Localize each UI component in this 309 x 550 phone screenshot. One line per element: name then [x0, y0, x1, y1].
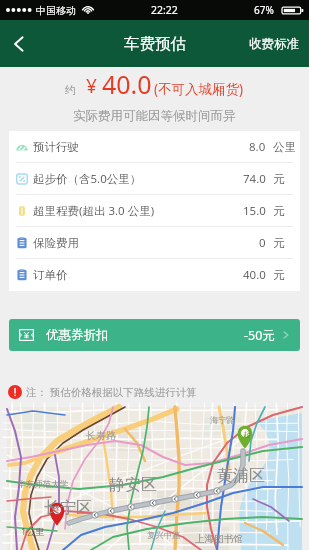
button[interactable]: 收费标准 [240, 26, 309, 62]
staticText: -50元 [244, 327, 275, 344]
staticText: 优惠券折扣 [46, 327, 109, 343]
staticText: 起 [243, 430, 250, 439]
button[interactable]: 保险费用 [9, 227, 300, 259]
staticText: 复兴中路 [147, 530, 181, 541]
staticText: 约 [65, 83, 76, 97]
staticText: 车费预估 [124, 34, 186, 54]
staticText: 实际费用可能因等候时间而异 [73, 108, 236, 124]
staticText: 长宁区 [44, 498, 92, 518]
button[interactable]: 预计行驶 [9, 131, 300, 163]
button[interactable]: 订单价 [9, 259, 300, 291]
staticText: 0 [259, 235, 266, 251]
staticText: 15.0 [243, 203, 266, 219]
staticText: 元 [273, 268, 285, 282]
staticText: 元 [273, 172, 285, 186]
staticText: 元 [273, 236, 285, 250]
staticText: 长寿路 [86, 429, 116, 442]
staticText: 华东师范大学 [17, 479, 68, 490]
staticText: 收费标准 [249, 36, 299, 52]
staticText: 中国移动 [36, 4, 76, 17]
staticText: 67% [254, 3, 274, 17]
staticText: 预计行驶 [33, 140, 79, 154]
button[interactable]: 起步价（含5.0公里） [9, 163, 300, 195]
staticText: 上海图书馆 [195, 533, 243, 545]
staticText: 静安区 [109, 475, 157, 495]
staticText: 超里程费(超出 3.0 公里) [33, 203, 155, 219]
staticText: 公里 [273, 140, 295, 154]
staticText: 海宁路 [210, 415, 236, 426]
staticText: 终 [53, 505, 60, 514]
staticText: 8.0 [249, 139, 266, 155]
staticText: (不可入城厢货) [154, 80, 244, 98]
staticText: 1公里 [21, 525, 45, 537]
staticText: 订单价 [33, 268, 68, 282]
staticText: 74.0 [243, 171, 266, 187]
staticText: 40.0 [102, 67, 152, 101]
button[interactable]: 优惠券折扣 [9, 319, 300, 351]
staticText: 注： 预估价格根据以下路线进行计算 [26, 385, 197, 399]
staticText: 保险费用 [33, 236, 79, 250]
staticText: 40.0 [243, 267, 266, 283]
button[interactable]: Back [0, 25, 38, 63]
staticText: 元 [273, 204, 285, 218]
staticText: ¥ [86, 73, 97, 99]
staticText: 黄浦区 [217, 466, 265, 486]
staticText: 起步价（含5.0公里） [33, 171, 142, 187]
button[interactable]: 超里程费(超出 3.0 公里) [9, 195, 300, 227]
staticText: 22:22 [151, 3, 178, 17]
